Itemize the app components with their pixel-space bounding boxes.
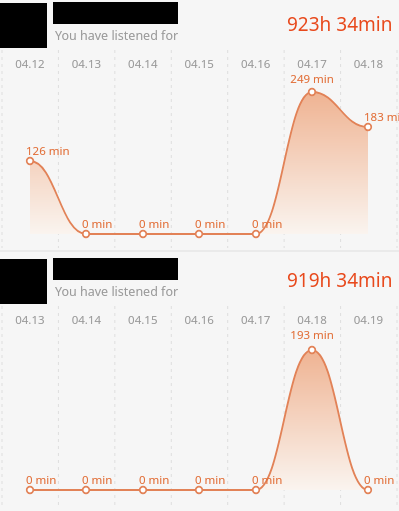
button[interactable]: Listening history week 2 bbox=[0, 256, 399, 511]
button[interactable]: Listening history week 1 bbox=[0, 0, 399, 250]
